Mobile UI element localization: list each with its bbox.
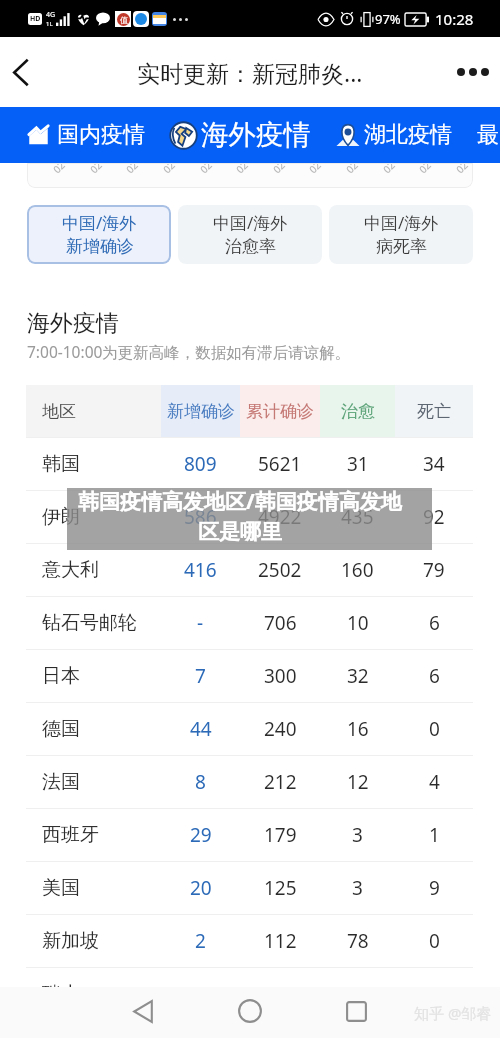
staticText: 3: [352, 822, 363, 848]
staticText: 02: [380, 163, 398, 176]
staticText: 海外疫情: [27, 309, 119, 338]
staticText: 法国: [42, 770, 80, 794]
staticText: 416: [184, 557, 217, 583]
staticText: 值: [120, 15, 128, 25]
staticText: 160: [341, 557, 374, 583]
button[interactable]: 中国/海外: [27, 205, 171, 264]
staticText: 0: [429, 716, 440, 742]
staticText: 区是哪里: [198, 519, 282, 545]
staticText: HD: [30, 14, 41, 24]
staticText: 97%: [375, 10, 401, 28]
staticText: 新加坡: [42, 929, 99, 953]
staticText: 美国: [42, 876, 80, 900]
staticText: 02: [123, 163, 141, 176]
staticText: 02: [416, 163, 434, 176]
staticText: 伊朗: [42, 505, 80, 529]
staticText: 1L: [46, 20, 53, 28]
staticText: 179: [264, 822, 297, 848]
staticText: 809: [184, 451, 217, 477]
button[interactable]: [330, 117, 366, 153]
button[interactable]: 中国/海外: [329, 205, 473, 264]
staticText: 435: [341, 504, 374, 530]
button[interactable]: 国内疫情: [57, 119, 145, 151]
button[interactable]: More options: [448, 46, 500, 98]
staticText: 死亡: [417, 401, 451, 422]
staticText: 新增确诊: [66, 236, 134, 257]
staticText: 02: [453, 163, 471, 176]
staticText: 706: [264, 610, 297, 636]
staticText: 病死率: [376, 236, 427, 257]
staticText: 中国/海外: [364, 211, 439, 234]
staticText: 29: [190, 822, 212, 848]
staticText: 8: [195, 769, 206, 795]
button[interactable]: [20, 118, 57, 152]
button[interactable]: 中国/海外: [178, 205, 322, 264]
button[interactable]: 海外疫情: [201, 117, 311, 153]
staticText: 实时更新：新冠肺炎...: [137, 57, 363, 88]
staticText: 新增确诊: [167, 401, 235, 422]
staticText: 31: [347, 451, 369, 477]
staticText: 瑞士: [42, 982, 80, 1006]
staticText: 德国: [42, 717, 80, 741]
staticText: 韩国疫情高发地区/韩国疫情高发地: [78, 487, 402, 516]
staticText: 累计确诊: [246, 401, 314, 422]
button[interactable]: Home: [228, 989, 272, 1033]
staticText: 112: [264, 928, 297, 954]
staticText: 9: [429, 875, 440, 901]
staticText: 地区: [42, 401, 76, 422]
staticText: 海外疫情: [201, 118, 311, 153]
staticText: 治愈: [341, 401, 375, 422]
staticText: 0: [429, 928, 440, 954]
staticText: 4922: [258, 504, 302, 530]
staticText: 02: [343, 163, 361, 176]
staticText: 4: [429, 769, 440, 795]
staticText: 中国/海外: [62, 211, 137, 234]
staticText: 7:00-10:00为更新高峰，数据如有滞后请谅解。: [27, 341, 351, 362]
staticText: 钻石号邮轮: [42, 611, 137, 635]
staticText: 02: [160, 163, 178, 176]
staticText: 湖北疫情: [364, 121, 452, 149]
staticText: 02: [306, 163, 324, 176]
staticText: 212: [264, 769, 297, 795]
staticText: 02: [233, 163, 251, 176]
staticText: 10: [347, 610, 369, 636]
button[interactable]: Recent apps: [334, 989, 378, 1033]
staticText: 知乎 @邹睿: [414, 1003, 492, 1023]
button[interactable]: Back: [121, 989, 165, 1033]
staticText: 20: [190, 875, 212, 901]
staticText: 79: [423, 557, 445, 583]
staticText: 2: [195, 928, 206, 954]
staticText: 治愈率: [225, 236, 276, 257]
staticText: 02: [197, 163, 215, 176]
staticText: 02: [87, 163, 105, 176]
staticText: 6: [429, 663, 440, 689]
staticText: -: [197, 610, 204, 636]
staticText: 300: [264, 663, 297, 689]
staticText: 韩国: [42, 452, 80, 476]
staticText: 12: [347, 769, 369, 795]
staticText: 1: [429, 822, 440, 848]
staticText: 4G: [46, 10, 56, 20]
staticText: 意大利: [42, 558, 99, 582]
staticText: 日本: [42, 664, 80, 688]
staticText: 3: [352, 875, 363, 901]
staticText: 6: [429, 610, 440, 636]
staticText: 34: [423, 451, 445, 477]
staticText: 2502: [258, 557, 302, 583]
staticText: 5621: [258, 451, 302, 477]
staticText: 西班牙: [42, 823, 99, 847]
staticText: 16: [347, 716, 369, 742]
staticText: 中国/海外: [213, 211, 288, 234]
button[interactable]: 湖北疫情: [364, 119, 452, 151]
staticText: 3: [352, 981, 363, 1007]
staticText: 7: [195, 663, 206, 689]
staticText: 最: [477, 121, 499, 149]
button[interactable]: Back: [0, 50, 42, 94]
staticText: 240: [264, 716, 297, 742]
staticText: 国内疫情: [57, 121, 145, 149]
button[interactable]: [164, 115, 202, 155]
staticText: 02: [50, 163, 68, 176]
staticText: 32: [347, 663, 369, 689]
